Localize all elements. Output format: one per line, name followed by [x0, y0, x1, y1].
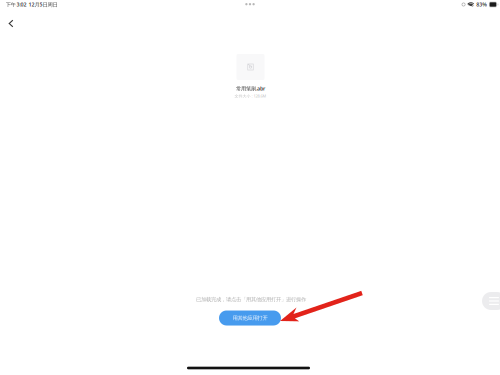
button[interactable]: 菜单 — [482, 292, 500, 310]
staticText: 用其他应用打开 — [232, 315, 267, 321]
staticText: 下午 3:02 12月5日周日 — [5, 1, 57, 8]
button[interactable]: 返回 — [0, 12, 22, 34]
staticText: 已加载完成，请点击「用其他应用打开」进行操作 — [196, 296, 306, 303]
staticText: 83% — [476, 1, 487, 8]
staticText: 常用笔刷.abr — [236, 85, 265, 92]
staticText: 文件大小 : 128.6M — [234, 93, 266, 99]
button[interactable]: 用其他应用打开 — [219, 310, 281, 325]
